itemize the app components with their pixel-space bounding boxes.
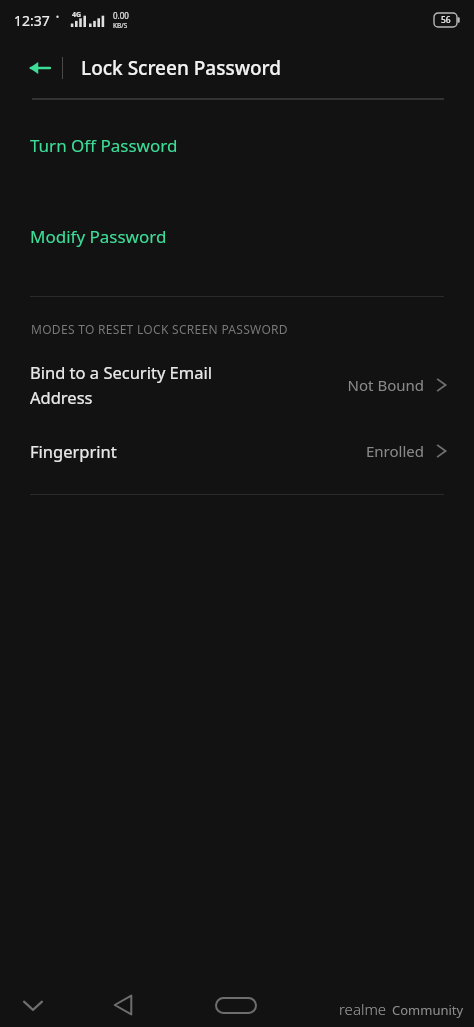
button[interactable]: Bind to a Security Email Address xyxy=(0,357,474,412)
staticText: Modify Password xyxy=(30,225,167,248)
staticText: Lock Screen Password xyxy=(81,55,282,81)
staticText: Not Bound xyxy=(347,375,424,395)
button[interactable]: Back xyxy=(18,46,62,90)
staticText: MODES TO RESET LOCK SCREEN PASSWORD xyxy=(31,321,288,337)
staticText: 12:37 xyxy=(14,11,50,30)
button[interactable]: Fingerprint xyxy=(0,436,474,466)
button[interactable]: Hide xyxy=(10,983,56,1027)
button[interactable]: Back xyxy=(100,983,146,1027)
button[interactable]: Modify Password xyxy=(0,211,474,262)
staticText: 0.00 xyxy=(113,10,129,21)
staticText: realme xyxy=(339,999,387,1019)
staticText: KB/S xyxy=(113,21,128,30)
staticText: Community xyxy=(392,1001,464,1019)
staticText: Enrolled xyxy=(365,441,424,461)
staticText: 56 xyxy=(441,14,451,26)
button[interactable]: Recents xyxy=(206,985,266,1025)
staticText: 4G xyxy=(72,10,82,20)
staticText: Bind to a Security Email Address xyxy=(30,361,347,408)
button[interactable]: Turn Off Password xyxy=(0,120,474,171)
staticText: Turn Off Password xyxy=(30,134,178,157)
staticText: Fingerprint xyxy=(30,440,365,462)
